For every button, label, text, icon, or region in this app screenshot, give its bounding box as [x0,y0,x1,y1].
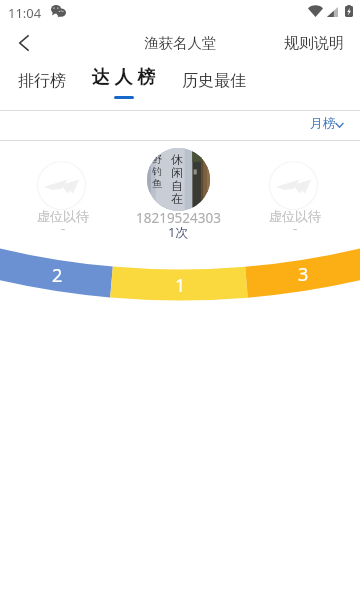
staticText: 自 [171,178,183,191]
staticText: 11:04 [8,4,42,22]
staticText: 虚位以待 [37,208,89,224]
button[interactable]: 月榜 [294,113,360,139]
staticText: - [61,219,66,237]
staticText: 休 [171,152,183,165]
staticText: 1 [175,273,186,295]
button[interactable]: 虚位以待 [253,161,333,244]
button[interactable]: Back [0,26,46,60]
staticText: 排行榜 [18,71,66,91]
staticText: 2 [52,263,63,285]
button[interactable]: 达人榜 [81,60,165,101]
staticText: 历史最佳 [182,71,246,91]
staticText: 在 [171,191,183,204]
button[interactable]: 虚位以待 [21,161,101,244]
staticText: 虚位以待 [269,208,321,224]
staticText: 渔获名人堂 [144,34,217,52]
staticText: 野 [152,153,162,165]
staticText: 达人榜 [89,66,158,89]
staticText: 1次 [168,223,189,241]
staticText: 规则说明 [284,34,344,53]
button[interactable]: 规则说明 [270,26,360,60]
staticText: 闲 [171,165,183,178]
button[interactable]: 野 [128,148,228,247]
staticText: 18219524303 [136,209,221,227]
staticText: 月榜 [310,115,336,131]
staticText: - [293,219,298,237]
button[interactable]: 排行榜 [8,62,76,100]
staticText: 3 [298,262,309,284]
staticText: 钓 [152,165,162,177]
staticText: 鱼 [152,177,162,189]
button[interactable]: 历史最佳 [172,62,256,100]
